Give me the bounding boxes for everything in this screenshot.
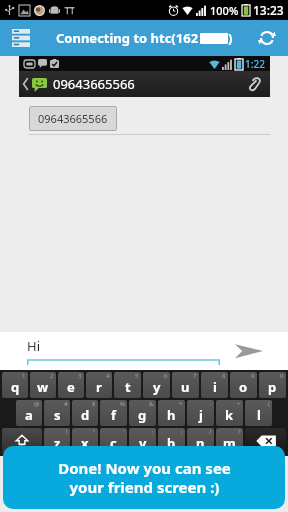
staticText: 3 [78,372,82,380]
staticText: j [199,406,203,424]
button[interactable]: & [129,400,156,426]
staticText: b [167,434,176,452]
staticText: " [93,428,96,436]
staticText: Connecting to htc(162 [56,29,199,47]
staticText: 4 [106,372,110,380]
button[interactable]: % [100,400,127,426]
button[interactable]: : [129,428,156,454]
staticText: h [167,406,176,424]
staticText: t [125,378,131,396]
button[interactable]: ( [245,400,272,426]
staticText: 1 [22,372,26,380]
button[interactable]: 1 [2,372,28,398]
staticText: 13:23 [253,2,284,18]
staticText: g [138,406,147,424]
staticText: p [268,378,277,396]
staticText: # [64,400,68,408]
staticText: k [225,406,234,424]
button[interactable]: 6 [143,372,170,398]
staticText: 6 [164,372,168,380]
staticText: n [196,434,205,452]
button[interactable]: 5 [114,372,141,398]
staticText: w [37,378,49,396]
staticText: y [153,378,161,396]
staticText: z [54,434,61,452]
button[interactable]: ' [100,428,127,454]
button[interactable]: Menu [6,23,36,53]
staticText: i [213,378,217,396]
button[interactable]: Done! Now you can see your friend screen… [3,446,285,509]
staticText: ; [181,428,183,436]
staticText: m [223,434,236,452]
button[interactable]: - [187,400,214,426]
button[interactable]: @ [16,400,42,426]
button[interactable]: 2 [30,372,56,398]
staticText: a [25,406,33,424]
button[interactable]: 3 [58,372,84,398]
button[interactable]: Backspace [245,428,286,454]
button[interactable]: + [216,400,243,426]
staticText: l [257,406,261,424]
staticText: - [210,400,212,408]
staticText: ' [123,428,125,436]
button[interactable]: 4 [86,372,112,398]
button[interactable]: 9 [230,372,257,398]
button[interactable]: Shift [2,428,42,454]
button[interactable]: 0 [259,372,286,398]
button[interactable]: ! [44,428,70,454]
staticText: f [111,406,117,424]
staticText: 2 [50,372,54,380]
staticText: / [209,428,212,436]
button[interactable]: * [158,400,185,426]
staticText: 09643665566 [53,75,135,93]
staticText: 100% [210,3,239,18]
button[interactable]: 7 [172,372,199,398]
button[interactable]: ? [216,428,243,454]
staticText: $ [92,400,96,408]
staticText: & [149,400,154,408]
button[interactable]: ; [158,428,185,454]
staticText: ? [238,428,241,436]
button[interactable]: Send [232,334,266,368]
staticText: s [54,406,61,424]
button[interactable]: 09643665566 [23,75,135,93]
button[interactable]: Attach [242,73,264,95]
staticText: ( [268,400,270,408]
staticText: Hi [27,337,40,355]
staticText: c [110,434,117,452]
staticText: * [179,400,183,408]
staticText: Done! Now you can see your friend screen… [58,458,231,497]
staticText: 1:22 [245,57,265,71]
staticText: v [139,434,147,452]
staticText: ! [66,428,68,436]
button[interactable]: Refresh [252,23,282,53]
staticText: 09643665566 [38,111,108,126]
button[interactable]: " [72,428,98,454]
staticText: + [237,400,241,408]
button[interactable]: # [44,400,70,426]
staticText: ) [228,29,233,47]
staticText: 5 [135,372,139,380]
staticText: @ [34,400,40,408]
staticText: : [152,428,154,436]
staticText: 9 [251,372,255,380]
staticText: r [96,378,102,396]
staticText: q [11,378,20,396]
staticText: 7 [193,372,197,380]
staticText: d [81,406,90,424]
staticText: o [239,378,248,396]
staticText: u [181,378,190,396]
button[interactable]: / [187,428,214,454]
staticText: 0 [280,372,284,380]
button[interactable]: $ [72,400,98,426]
button[interactable]: 8 [201,372,228,398]
staticText: % [120,400,125,408]
staticText: e [67,378,75,396]
staticText: 8 [222,372,226,380]
staticText: x [81,434,89,452]
